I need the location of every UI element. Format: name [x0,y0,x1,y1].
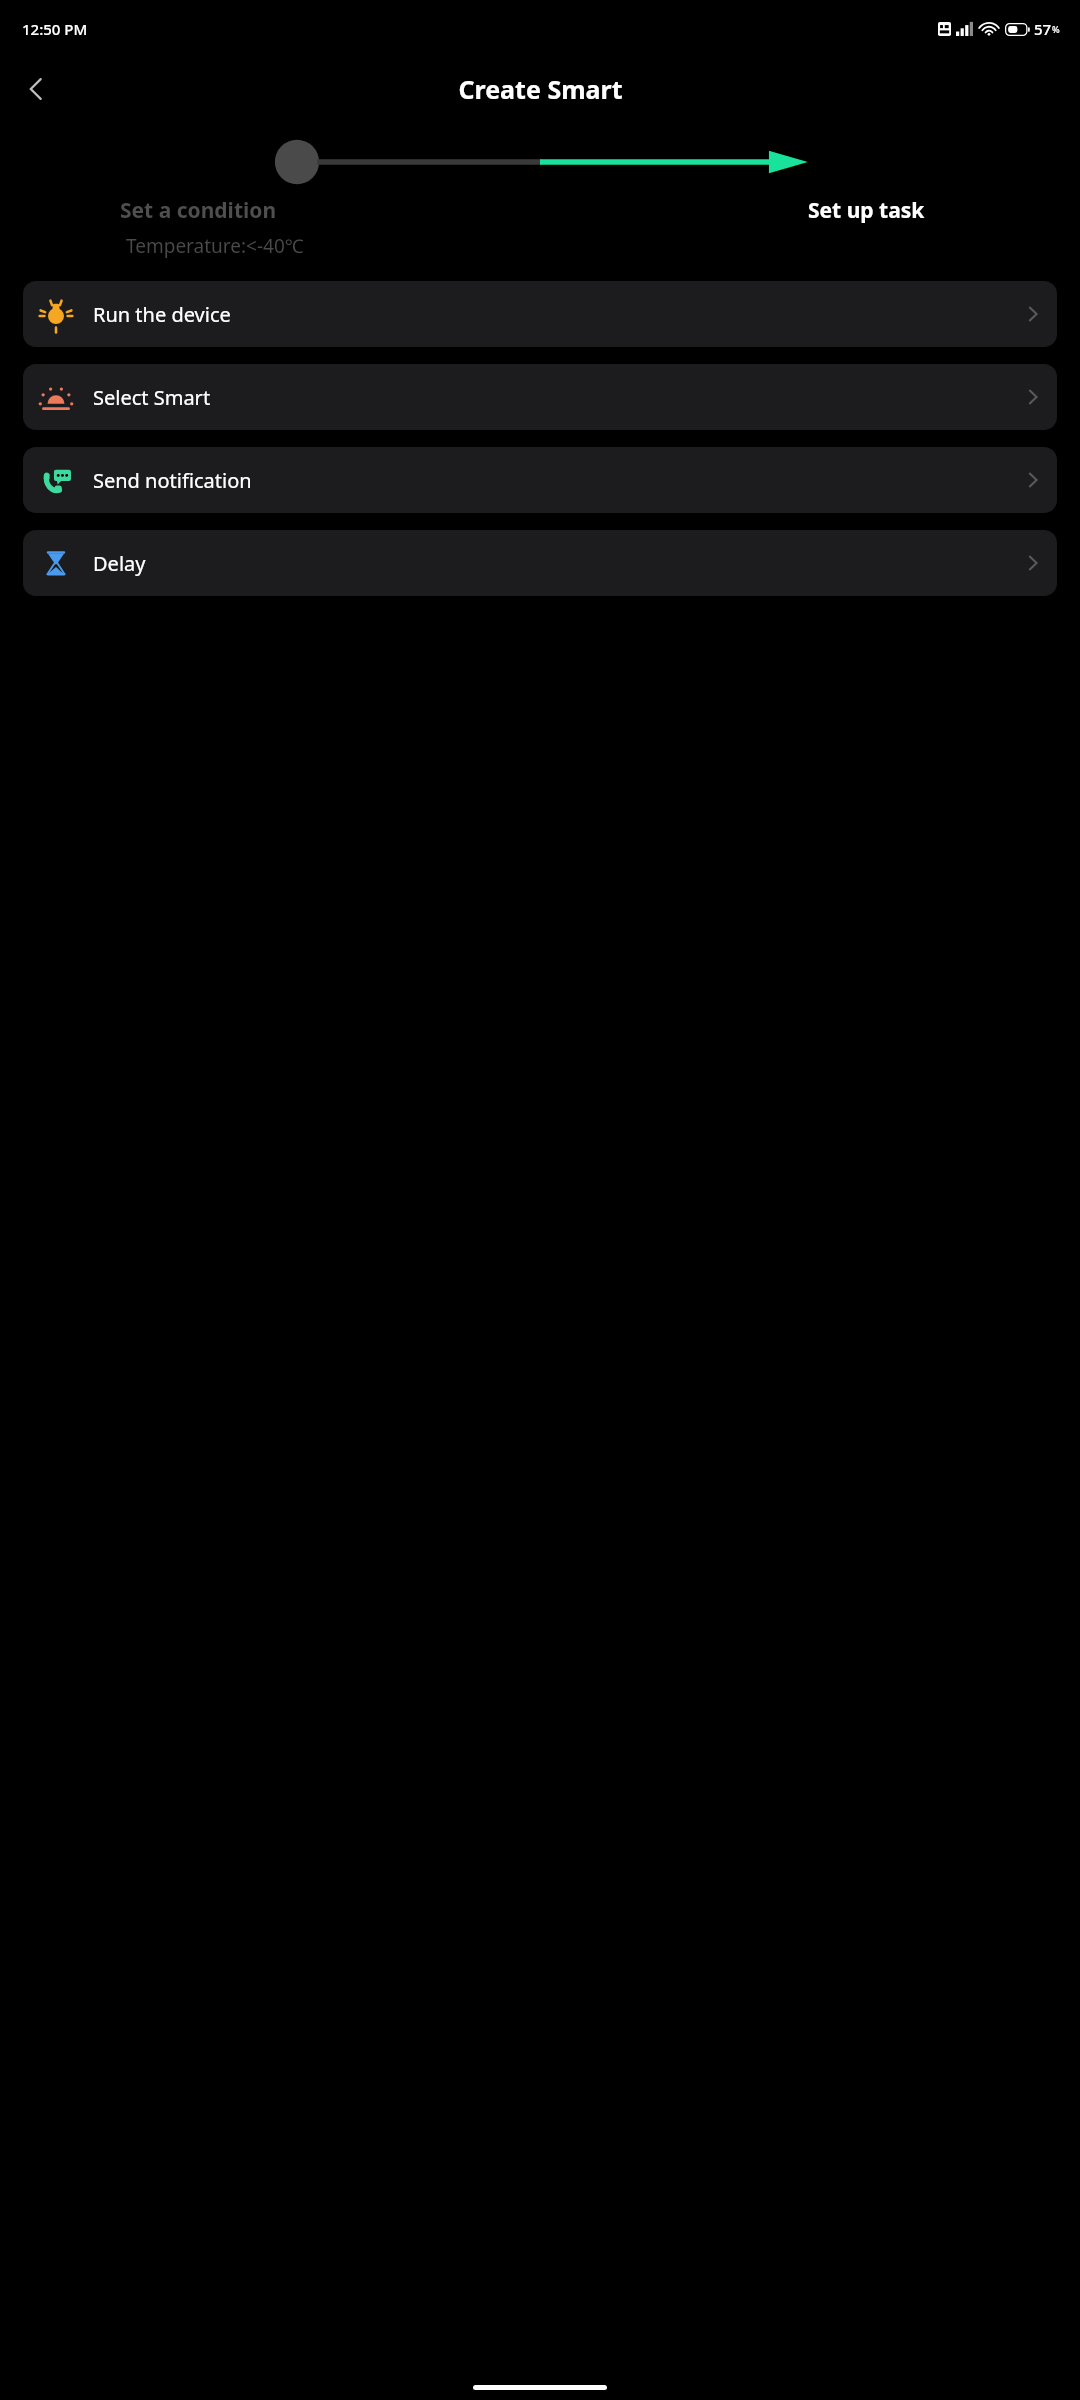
staticText: 57 [1034,19,1052,39]
staticText: Set up task [808,196,925,225]
staticText: Delay [93,550,146,577]
staticText: Select Smart [93,384,211,411]
staticText: Set a condition [120,196,277,225]
staticText: Run the device [93,301,231,328]
staticText: Create Smart [458,72,623,106]
button[interactable]: Back [8,61,64,117]
staticText: % [1052,23,1060,35]
staticText: 12:50 PM [22,19,88,39]
staticText: Send notification [93,467,252,494]
button[interactable]: Select Smart [23,364,1057,430]
staticText: Temperature:<-40℃ [126,233,304,259]
button[interactable]: Run the device [23,281,1057,347]
button[interactable]: Delay [23,530,1057,596]
button[interactable]: Send notification [23,447,1057,513]
